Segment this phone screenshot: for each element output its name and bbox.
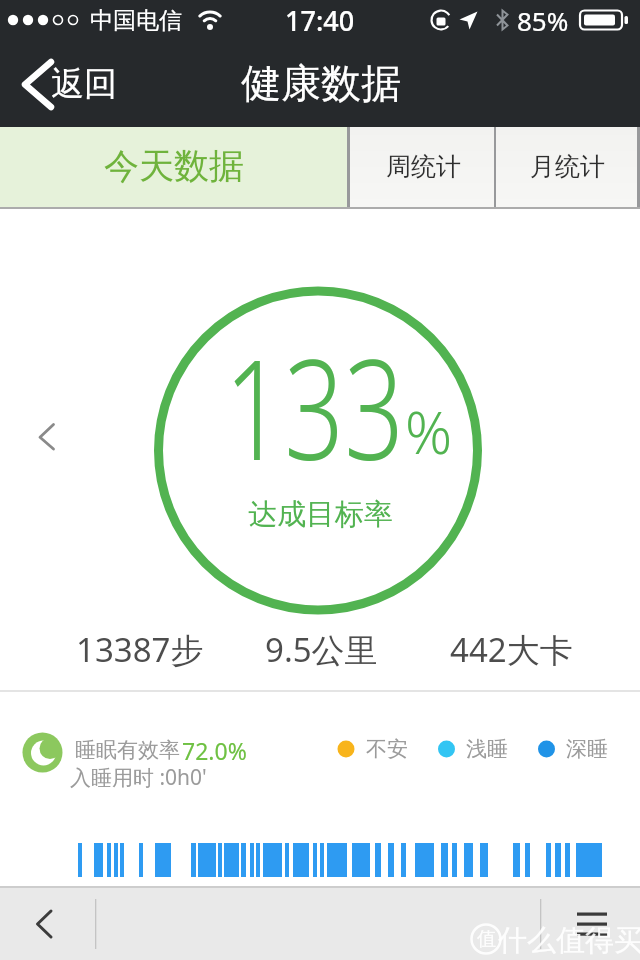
staticText: 浅睡: [466, 736, 508, 762]
staticText: 月统计: [530, 151, 605, 182]
button[interactable]: [560, 888, 640, 960]
staticText: 85%: [517, 3, 569, 38]
staticText: 中国电信: [90, 6, 182, 35]
staticText: 返回: [51, 63, 117, 105]
staticText: 72.0%: [182, 735, 247, 766]
staticText: 值: [477, 927, 496, 951]
staticText: 17:40: [285, 2, 355, 39]
button[interactable]: [10, 45, 140, 120]
staticText: 健康数据: [241, 58, 401, 108]
button[interactable]: [496, 127, 637, 207]
staticText: 9.5公里: [265, 627, 378, 672]
staticText: 不安: [366, 736, 408, 762]
staticText: 今天数据: [104, 144, 244, 188]
button[interactable]: [0, 888, 95, 960]
staticText: 周统计: [386, 151, 461, 182]
staticText: %: [405, 392, 453, 471]
staticText: 深睡: [566, 736, 608, 762]
staticText: 13387步: [76, 627, 204, 672]
staticText: 什么值得买: [498, 922, 640, 959]
staticText: 入睡用时 :0h0': [70, 763, 207, 792]
staticText: 442大卡: [450, 627, 573, 672]
button[interactable]: [25, 410, 70, 465]
staticText: 达成目标率: [248, 496, 393, 533]
button[interactable]: [0, 127, 347, 207]
staticText: 睡眠有效率: [75, 737, 180, 763]
button[interactable]: [350, 127, 494, 207]
staticText: 133: [224, 312, 404, 472]
